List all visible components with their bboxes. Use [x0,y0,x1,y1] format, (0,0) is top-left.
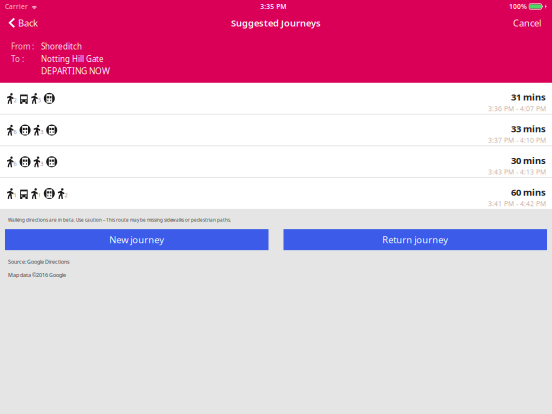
staticText: Suggested Journeys [231,17,321,29]
staticText: 60 mins [511,186,546,198]
staticText: Shoreditch [41,41,82,52]
staticText: 3:36 PM - 4:07 PM [488,104,546,113]
staticText: 6 [14,160,17,167]
staticText: 3 [40,128,43,135]
staticText: Map data ©2016 Google [8,271,66,279]
button[interactable]: Cancel [507,13,550,33]
staticText: 33 mins [511,122,546,135]
staticText: 3:41 PM - 4:42 PM [488,199,546,208]
staticText: 1 [14,191,17,199]
staticText: Return journey [382,233,448,246]
button[interactable]: 2 [0,83,552,114]
staticText: 2 [14,96,17,104]
staticText: 100% [509,2,527,11]
button[interactable]: Back [2,13,44,33]
staticText: 3 [38,96,41,104]
staticText: To : [11,54,24,64]
button[interactable]: 6 [0,146,552,177]
staticText: 1 [38,191,41,199]
staticText: Cancel [513,17,541,29]
staticText: New journey [109,233,164,246]
staticText: Source: Google Directions [8,258,70,265]
staticText: From : [11,41,34,52]
staticText: 3 [40,160,43,167]
staticText: 3:37 PM - 4:10 PM [488,136,546,145]
staticText: 3:43 PM - 4:13 PM [488,167,546,176]
staticText: 2 [64,191,67,199]
button[interactable]: 6 [0,115,552,146]
button[interactable]: Return journey [283,229,547,250]
button[interactable]: 1 [0,178,552,209]
staticText: Back [18,17,38,29]
staticText: DEPARTING NOW [41,65,110,77]
staticText: 3:35 PM [260,2,286,11]
button[interactable]: New journey [5,229,268,250]
staticText: Walking directions are in beta. Use caut… [8,217,231,223]
staticText: Carrier [5,2,28,11]
staticText: Notting Hill Gate [41,54,104,64]
staticText: 30 mins [511,154,546,166]
staticText: 31 mins [511,91,546,103]
staticText: 6 [14,128,17,135]
